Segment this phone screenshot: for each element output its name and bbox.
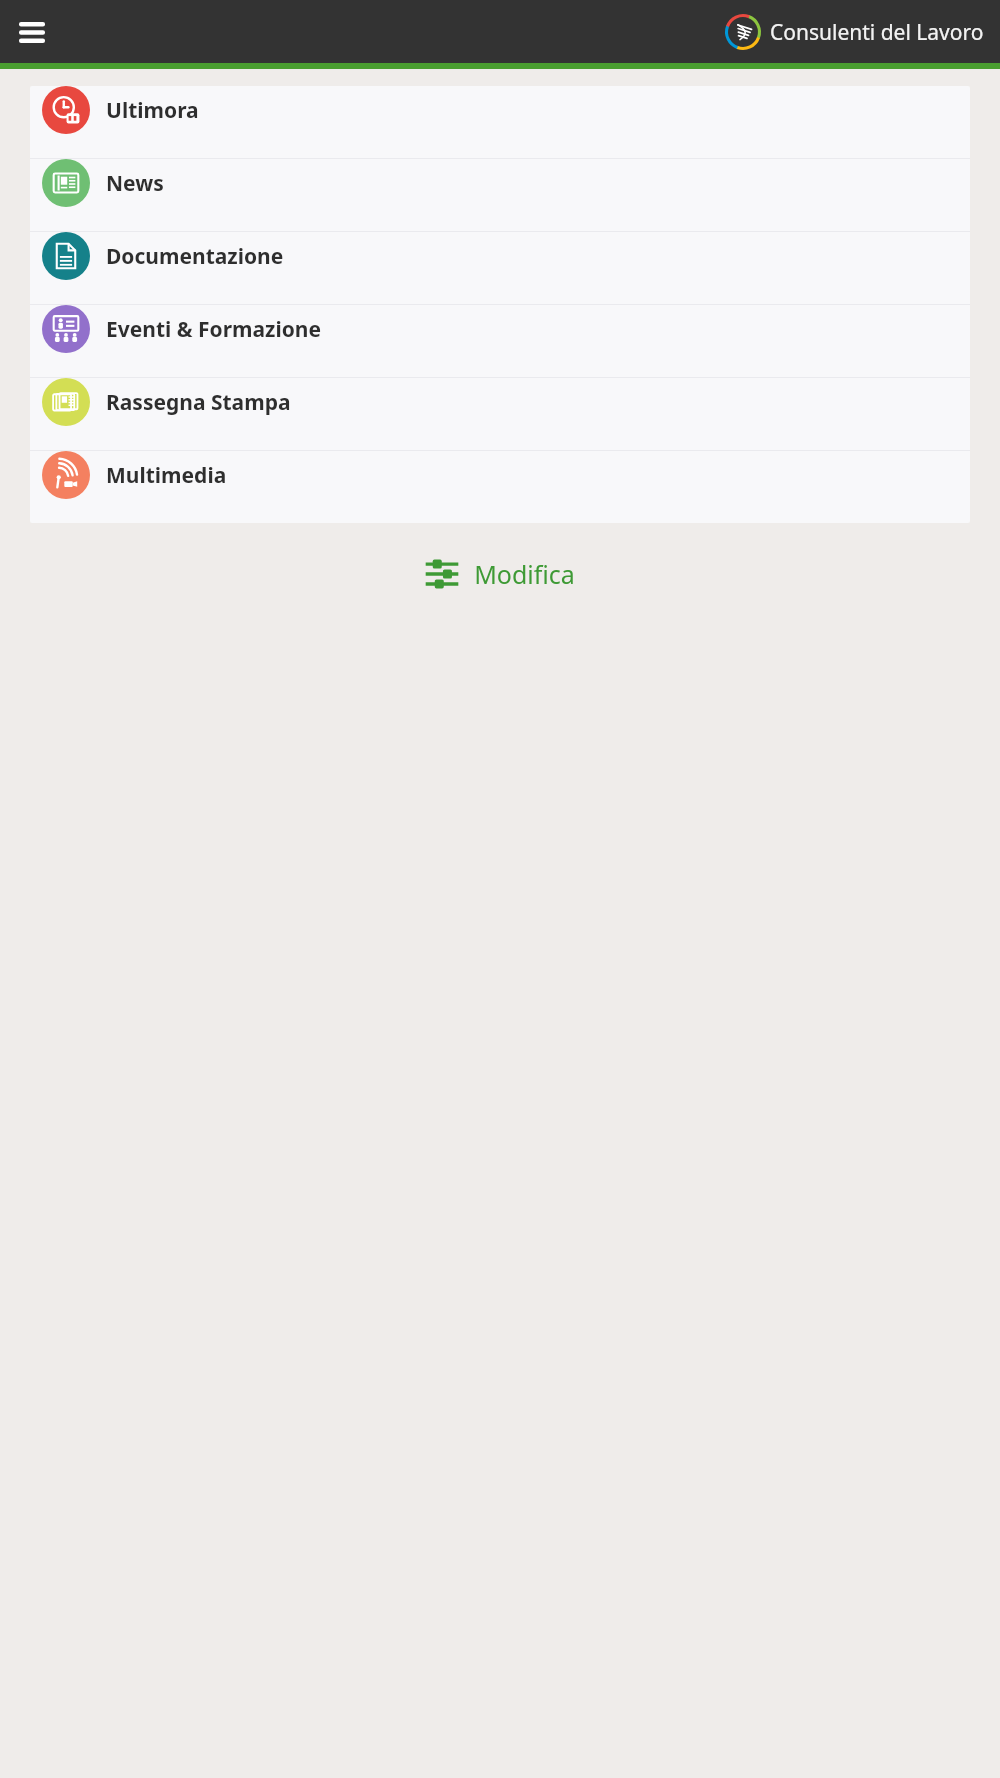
button[interactable]: Multimedia — [30, 451, 970, 523]
button[interactable]: Ultimora — [30, 86, 970, 158]
staticText: Multimedia — [106, 461, 227, 490]
button[interactable]: Consulenti del Lavoro — [725, 14, 984, 50]
staticText: Documentazione — [106, 242, 284, 271]
staticText: Consulenti del Lavoro — [770, 18, 984, 47]
staticText: Modifica — [474, 557, 575, 591]
button[interactable]: Rassegna Stampa — [30, 378, 970, 450]
staticText: Rassegna Stampa — [106, 388, 291, 417]
button[interactable]: News — [30, 159, 970, 231]
staticText: News — [106, 169, 164, 198]
button[interactable]: Modifica — [0, 557, 1000, 591]
staticText: Eventi & Formazione — [106, 315, 322, 344]
staticText: Ultimora — [106, 96, 199, 125]
button[interactable]: Apri il menu — [10, 10, 54, 54]
button[interactable]: Eventi & Formazione — [30, 305, 970, 377]
button[interactable]: Documentazione — [30, 232, 970, 304]
